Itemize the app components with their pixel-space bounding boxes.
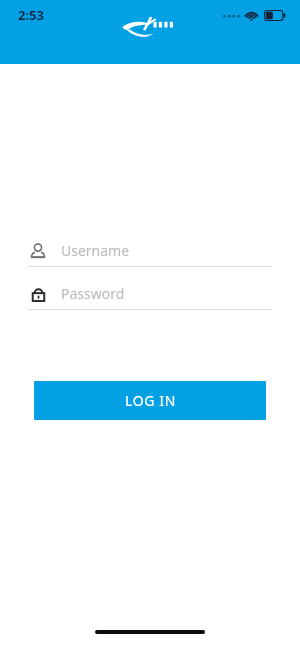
staticText: Username bbox=[61, 241, 130, 260]
staticText: 2:53 bbox=[18, 6, 44, 24]
other: KCPS logo bbox=[121, 14, 179, 40]
other: Username bbox=[28, 241, 48, 261]
staticText: Password bbox=[61, 284, 125, 303]
button[interactable]: Username bbox=[28, 235, 272, 267]
button[interactable]: LOG IN bbox=[34, 381, 266, 420]
button[interactable]: Password bbox=[28, 278, 272, 310]
staticText: LOG IN bbox=[125, 391, 176, 410]
other: Password bbox=[28, 284, 48, 304]
